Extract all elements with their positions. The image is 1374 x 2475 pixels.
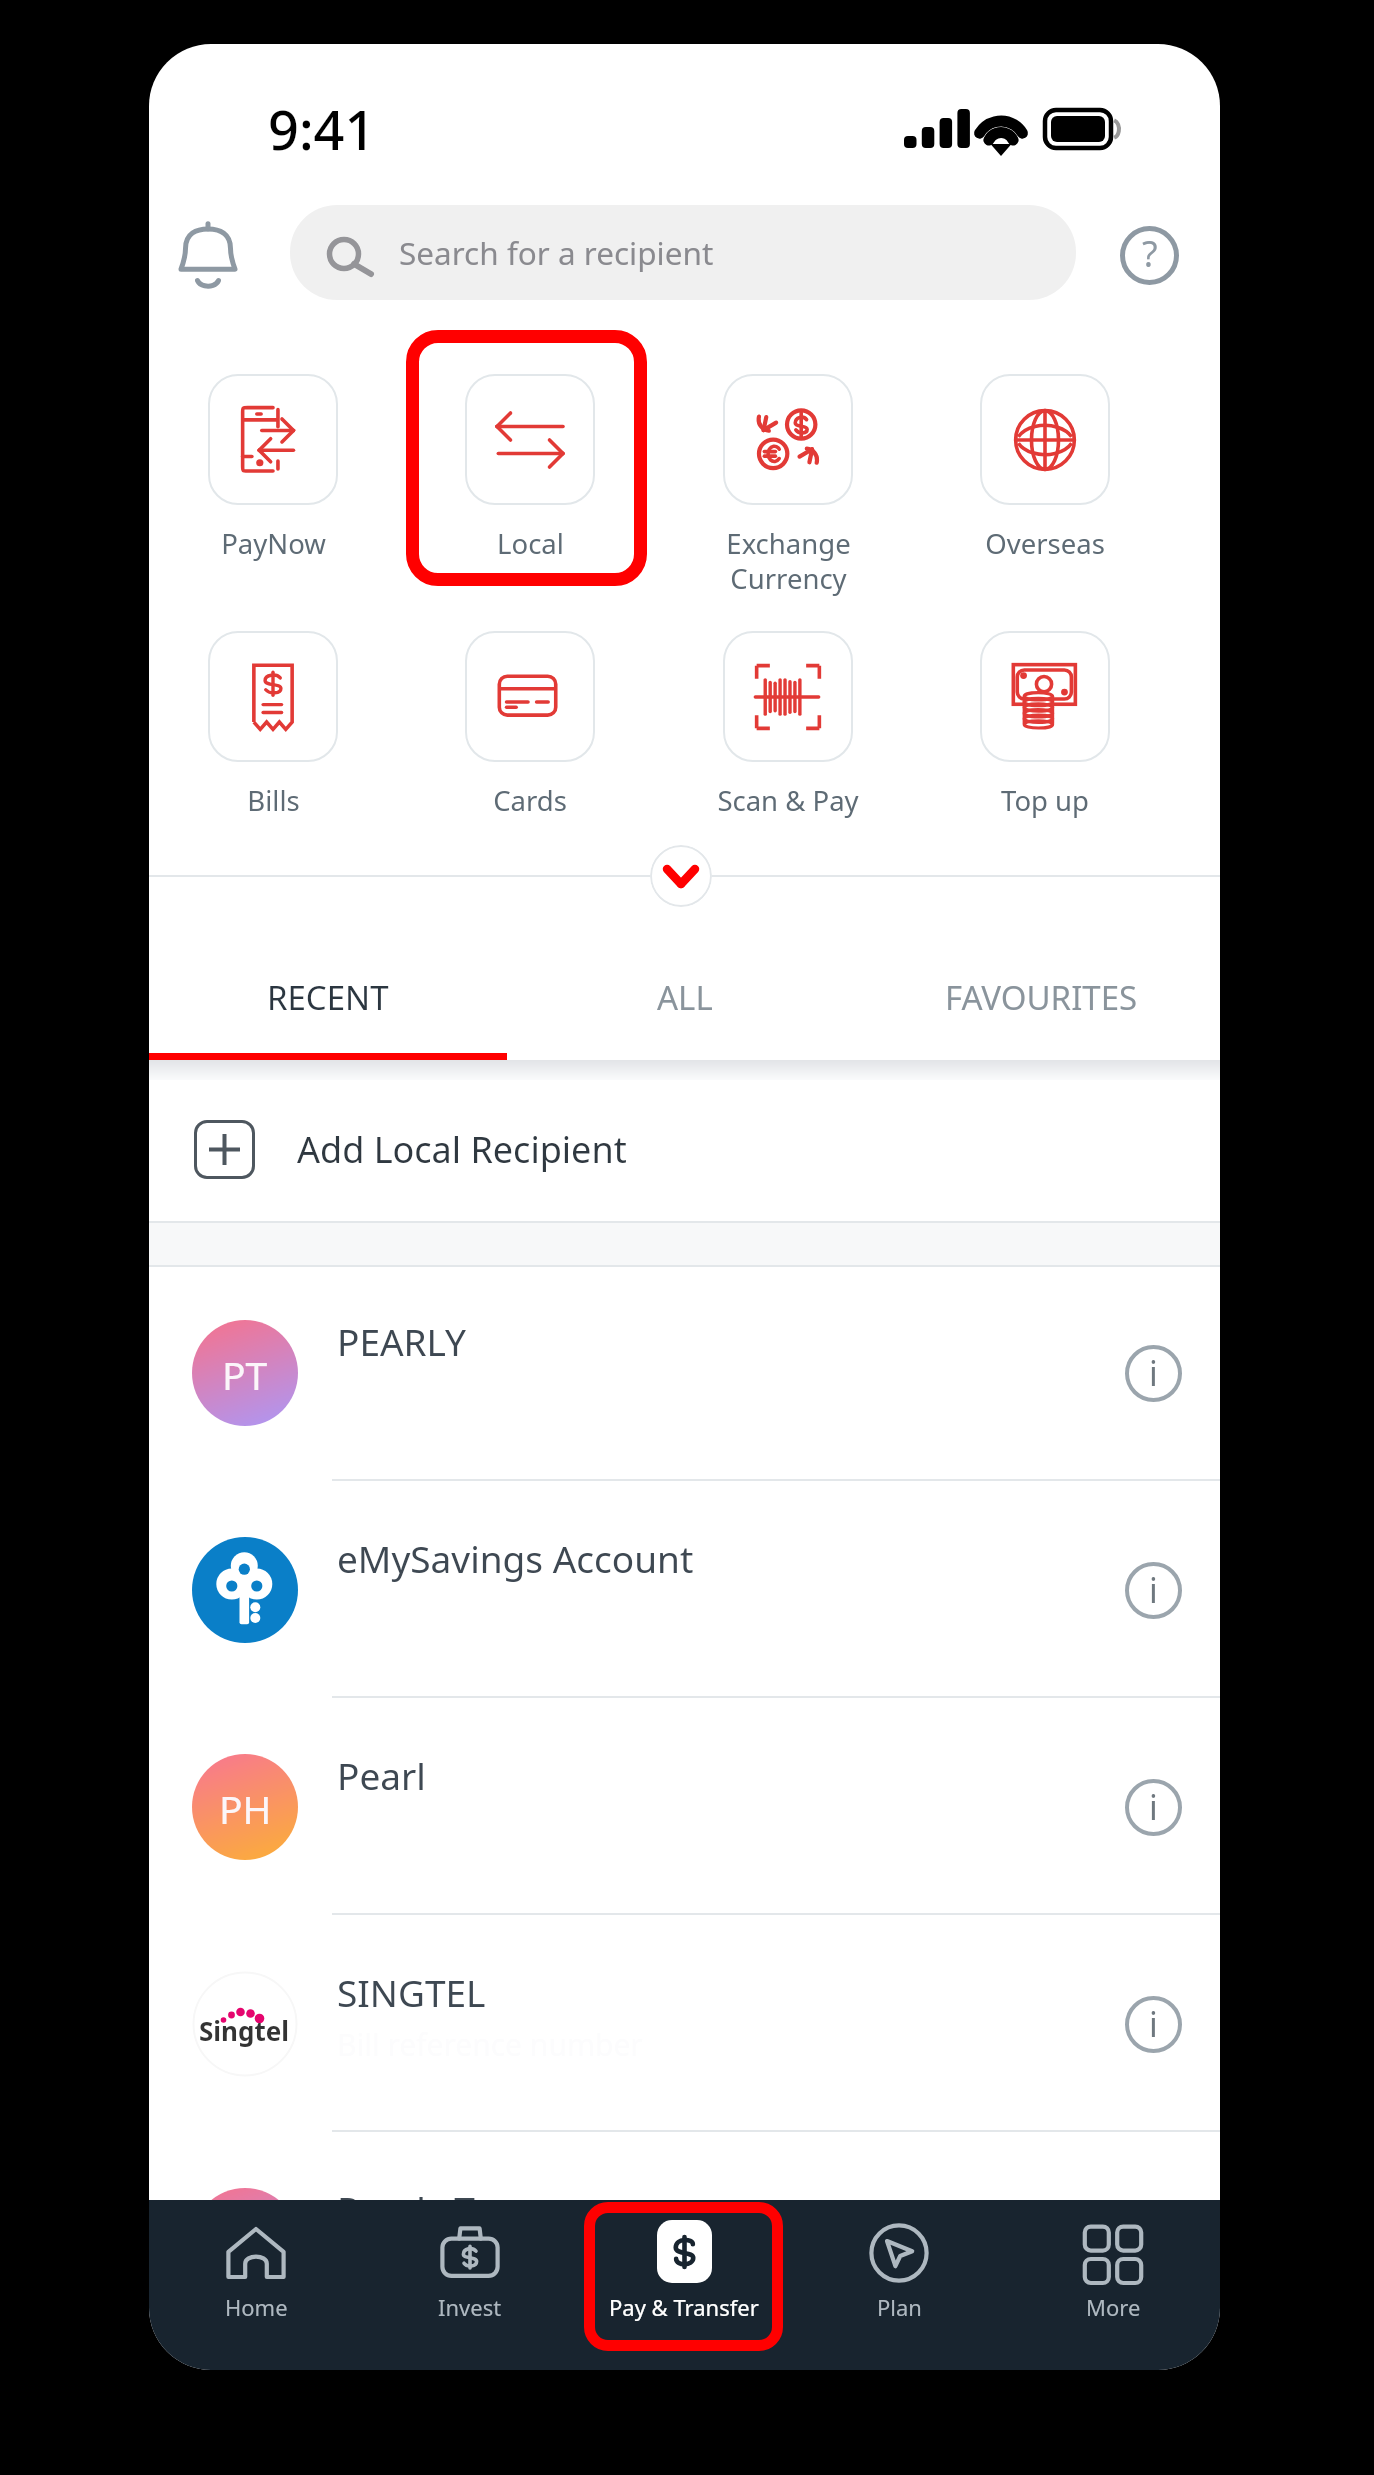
button[interactable]: Expand more [650,845,712,907]
button[interactable]: ALL [506,944,863,1051]
staticText: eMySavings Account [337,1533,694,1583]
button[interactable]: RECENT [149,944,506,1051]
button[interactable]: Cards [410,619,650,845]
staticText: RECENT [267,975,389,1020]
button[interactable]: Invest [363,2200,577,2370]
staticText: PH [219,1782,272,1835]
button[interactable]: More [1006,2200,1220,2370]
staticText: PayNow [221,525,326,562]
staticText: PT [222,1348,268,1401]
staticText: ALL [657,975,713,1020]
staticText: i [1149,1350,1158,1396]
button[interactable]: Search for a recipient [290,205,1076,300]
staticText: ? [1142,229,1158,278]
button[interactable]: Recipient info [1125,1345,1182,1402]
button[interactable]: Exchange Currency [668,362,908,588]
staticText: i [1149,1784,1158,1830]
staticText: Cards [493,782,567,819]
button[interactable]: Recipient info [1125,1779,1182,1836]
button[interactable]: Help [1120,226,1179,285]
staticText: SINGTEL [337,1967,486,2017]
button[interactable]: Overseas [925,362,1165,588]
button[interactable]: Pay & Transfer [577,2200,791,2370]
staticText: i [1149,2001,1158,2047]
button[interactable]: Recipient info [1125,1562,1182,1619]
staticText: Bills [247,782,300,819]
staticText: Invest [438,2292,502,2322]
button[interactable]: Home [149,2200,363,2370]
button[interactable]: Bills [153,619,393,845]
staticText: More [1086,2292,1141,2322]
button[interactable]: FAVOURITES [863,944,1220,1051]
button[interactable]: Local [410,362,650,588]
staticText: FAVOURITES [945,975,1138,1020]
staticText: Scan & Pay [717,782,859,819]
staticText: Pay & Transfer [609,2292,759,2322]
staticText: Search for a recipient [399,231,714,274]
staticText: Home [225,2292,288,2322]
staticText: Pearly T [337,2184,475,2234]
button[interactable]: PayNow [153,362,393,588]
button[interactable]: Notifications [177,220,239,286]
staticText: 9:41 [268,92,376,166]
button[interactable]: Singtel [149,1916,1220,2133]
button[interactable]: Recipient info [1125,1996,1182,2053]
staticText: i [1149,1567,1158,1613]
staticText: PEARLY [337,1316,466,1366]
staticText: Top up [1001,782,1089,819]
staticText: Exchange Currency [726,525,851,597]
button[interactable]: Plan [792,2200,1006,2370]
button[interactable]: Scan & Pay [668,619,908,845]
staticText: Add Local Recipient [297,1125,627,1174]
button[interactable]: PT [149,2133,1220,2350]
staticText: PT [222,2216,268,2269]
staticText: Overseas [985,525,1105,562]
button[interactable]: Top up [925,619,1165,845]
button[interactable]: Recipient info [1125,2213,1182,2270]
staticText: Singtel [199,2013,289,2048]
button[interactable]: PT [149,1265,1220,1482]
staticText: Local [497,525,564,562]
button[interactable]: PH [149,1699,1220,1916]
button[interactable]: Add Local Recipient [149,1080,1220,1221]
button[interactable]: eMySavings Account [149,1482,1220,1699]
staticText: Pearl [337,1750,426,1800]
staticText: Plan [877,2292,922,2322]
